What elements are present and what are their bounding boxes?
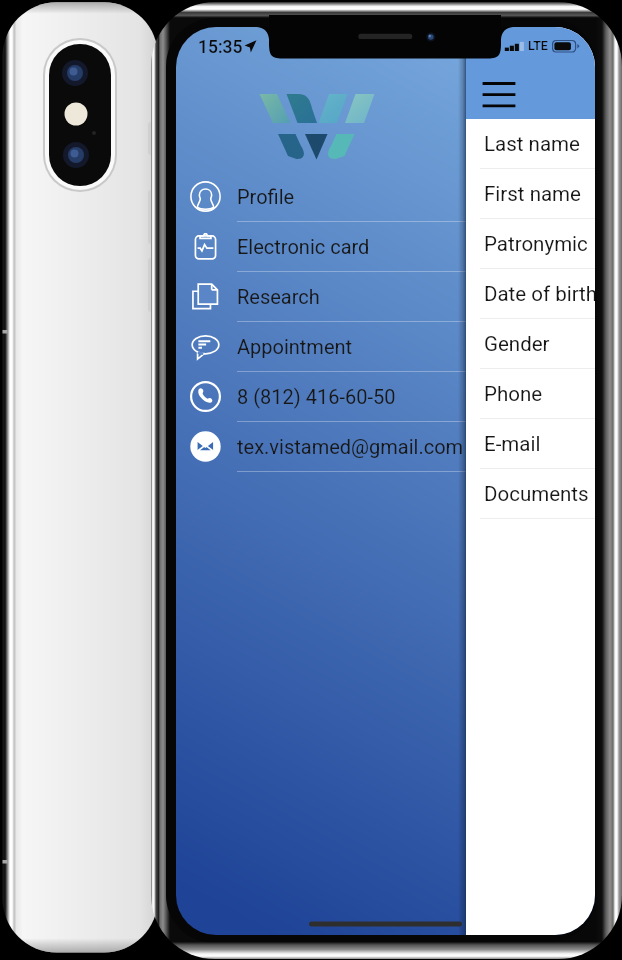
button[interactable]: 8 (812) 416-60-50: [176, 372, 466, 422]
button[interactable]: Profile: [176, 172, 466, 222]
button[interactable]: Last name: [466, 119, 595, 169]
staticText: Profile: [237, 185, 295, 208]
staticText: Phone: [484, 382, 543, 406]
staticText: Patronymic: [484, 232, 588, 256]
staticText: Electronic card: [237, 235, 370, 258]
button[interactable]: Gender: [466, 319, 595, 369]
button[interactable]: Date of birth: [466, 269, 595, 319]
button[interactable]: E-mail: [466, 419, 595, 469]
button[interactable]: First name: [466, 169, 595, 219]
staticText: 15:35: [198, 37, 243, 58]
staticText: Documents: [484, 482, 589, 506]
staticText: 8 (812) 416-60-50: [237, 385, 396, 408]
staticText: Gender: [484, 332, 550, 356]
staticText: tex.vistamed@gmail.com: [237, 435, 464, 458]
button[interactable]: Documents: [466, 469, 595, 519]
button[interactable]: Open navigation menu: [466, 27, 595, 119]
button[interactable]: tex.vistamed@gmail.com: [176, 422, 466, 472]
staticText: LTE: [528, 38, 548, 53]
button[interactable]: Appointment: [176, 322, 466, 372]
button[interactable]: Patronymic: [466, 219, 595, 269]
staticText: Last name: [484, 132, 580, 156]
button[interactable]: Electronic card: [176, 222, 466, 272]
staticText: E-mail: [484, 432, 541, 456]
staticText: Research: [237, 285, 320, 308]
button[interactable]: Research: [176, 272, 466, 322]
staticText: First name: [484, 182, 581, 206]
staticText: Appointment: [237, 335, 353, 358]
button[interactable]: Phone: [466, 369, 595, 419]
staticText: Date of birth: [484, 282, 595, 306]
